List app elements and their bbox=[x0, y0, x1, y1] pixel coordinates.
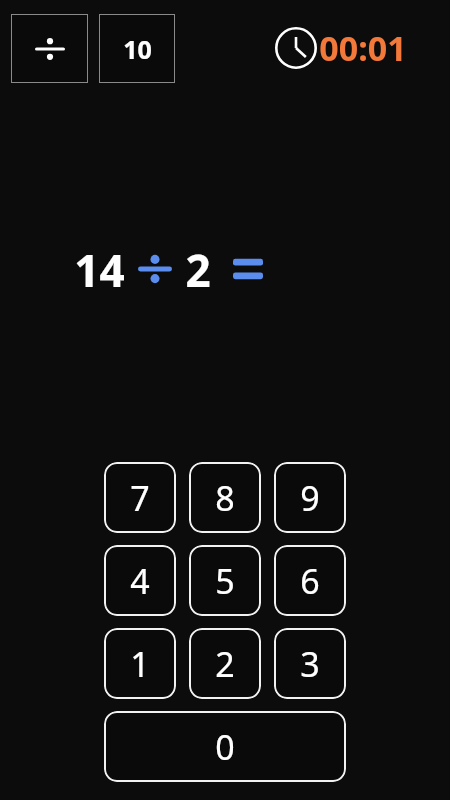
button[interactable]: Level 10 bbox=[99, 14, 175, 83]
staticText: 14 bbox=[74, 240, 125, 298]
staticText: 3 bbox=[300, 641, 320, 687]
staticText: 8 bbox=[215, 475, 235, 521]
staticText: 0 bbox=[215, 724, 235, 770]
other: Timer bbox=[273, 25, 319, 71]
button[interactable]: 6 bbox=[274, 545, 346, 616]
button[interactable]: 4 bbox=[104, 545, 176, 616]
button[interactable]: 9 bbox=[274, 462, 346, 533]
staticText: 2 bbox=[215, 641, 235, 687]
button[interactable]: 1 bbox=[104, 628, 176, 699]
staticText: 9 bbox=[300, 475, 320, 521]
staticText: 4 bbox=[130, 558, 150, 604]
button[interactable]: 7 bbox=[104, 462, 176, 533]
button[interactable]: 5 bbox=[189, 545, 261, 616]
button[interactable]: 8 bbox=[189, 462, 261, 533]
staticText: 00:01 bbox=[319, 25, 407, 71]
staticText: 6 bbox=[300, 558, 320, 604]
button[interactable]: Division mode bbox=[11, 14, 88, 83]
button[interactable]: 3 bbox=[274, 628, 346, 699]
staticText: 10 bbox=[123, 32, 152, 66]
staticText: 7 bbox=[130, 475, 150, 521]
button[interactable]: 0 bbox=[104, 711, 346, 782]
button[interactable]: 2 bbox=[189, 628, 261, 699]
staticText: 5 bbox=[215, 558, 235, 604]
staticText: 1 bbox=[130, 641, 150, 687]
staticText: 2 bbox=[185, 240, 211, 298]
